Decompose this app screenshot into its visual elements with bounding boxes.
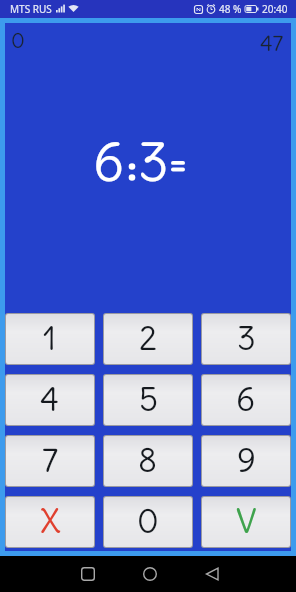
staticText: 0	[137, 500, 159, 541]
staticText: 5	[139, 378, 158, 419]
staticText: 48 %	[219, 2, 242, 16]
staticText: 4	[40, 378, 60, 419]
staticText: 7	[42, 439, 59, 480]
button[interactable]: 9	[202, 436, 290, 486]
button[interactable]: 7	[6, 436, 94, 486]
staticText: V	[236, 500, 257, 541]
staticText: 0	[11, 27, 25, 53]
button[interactable]: 5	[104, 375, 192, 425]
button[interactable]: 8	[104, 436, 192, 486]
staticText: 3	[138, 128, 169, 196]
staticText: 20:40	[262, 2, 288, 16]
button[interactable]: 0	[104, 497, 192, 547]
staticText: MTS RUS	[10, 2, 52, 16]
button[interactable]	[181, 556, 243, 592]
button[interactable]: X	[6, 497, 94, 547]
staticText: 6	[236, 378, 256, 419]
button[interactable]: V	[202, 497, 290, 547]
staticText: 9	[237, 439, 256, 480]
staticText: X	[40, 500, 61, 541]
button[interactable]: 2	[104, 314, 192, 364]
staticText: 47	[260, 29, 284, 57]
button[interactable]: 1	[6, 314, 94, 364]
button[interactable]: 4	[6, 375, 94, 425]
staticText: 6	[93, 128, 125, 196]
button[interactable]: 6	[202, 375, 290, 425]
button[interactable]: 3	[202, 314, 290, 364]
staticText: 2	[139, 317, 158, 358]
staticText: 3	[237, 317, 256, 358]
staticText: 8	[138, 439, 158, 480]
staticText: 1	[43, 317, 57, 358]
button[interactable]	[119, 556, 181, 592]
button[interactable]	[57, 556, 119, 592]
